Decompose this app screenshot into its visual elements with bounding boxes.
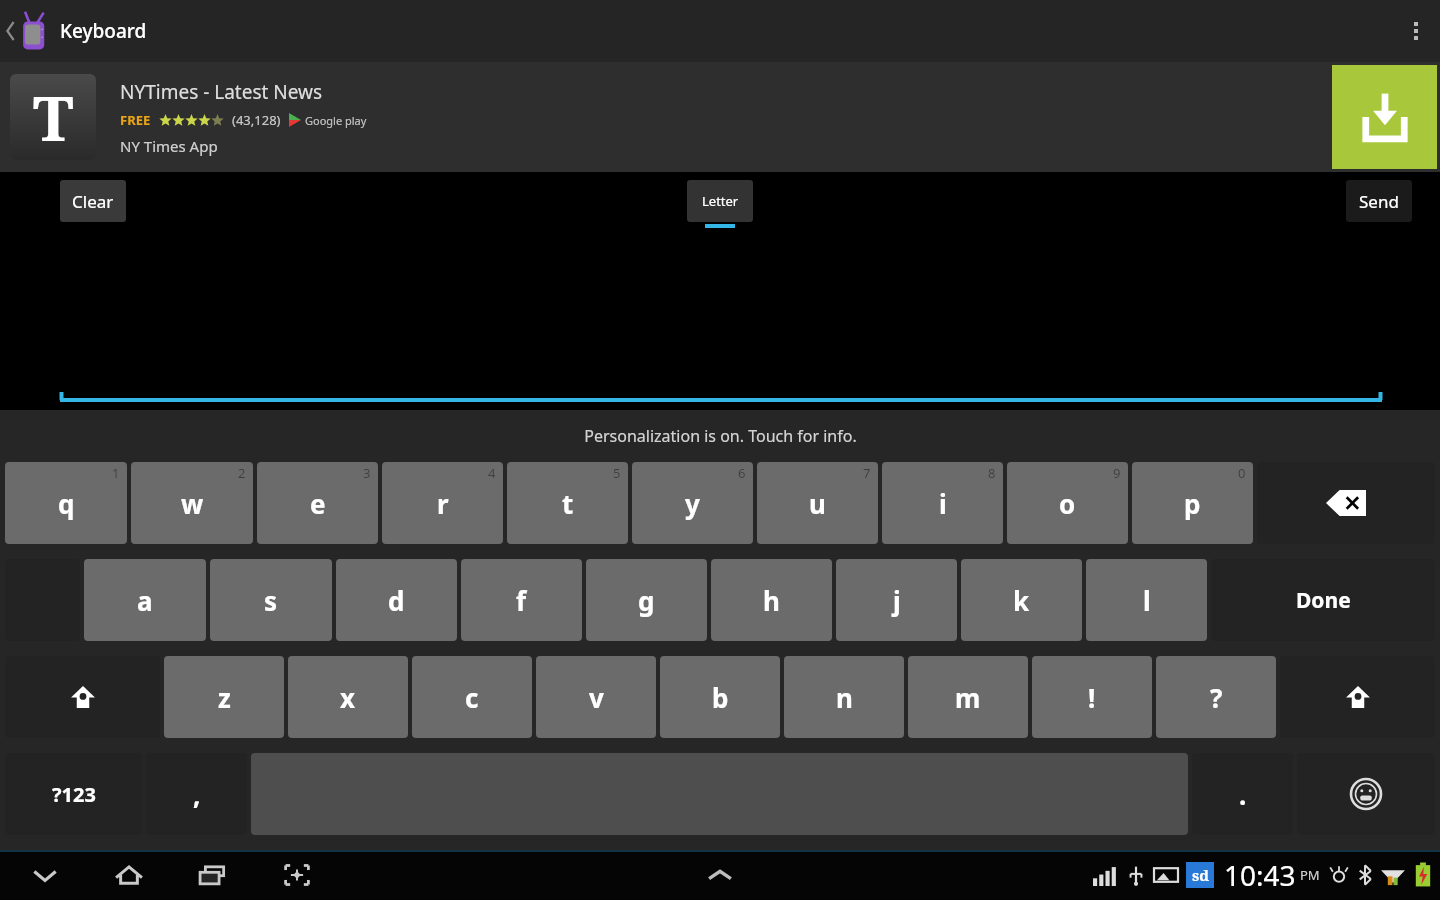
- button[interactable]: v: [536, 656, 656, 738]
- staticText: .: [1239, 777, 1247, 812]
- staticText: q: [58, 486, 75, 521]
- button[interactable]: ?123: [5, 753, 142, 835]
- staticText: v: [589, 680, 604, 715]
- button[interactable]: c: [412, 656, 532, 738]
- staticText: Letter: [702, 192, 739, 210]
- button[interactable]: b: [660, 656, 780, 738]
- staticText: a: [137, 583, 153, 618]
- button[interactable]: o: [1007, 462, 1128, 544]
- staticText: r: [437, 486, 449, 521]
- staticText: ?123: [52, 781, 96, 808]
- button[interactable]: f: [461, 559, 582, 641]
- staticText: Google play: [305, 113, 367, 128]
- button[interactable]: ,: [146, 753, 247, 835]
- staticText: Keyboard: [60, 18, 147, 44]
- staticText: 3: [363, 464, 371, 482]
- button[interactable]: Expand: [690, 850, 750, 900]
- staticText: NYTimes - Latest News: [120, 79, 323, 105]
- button[interactable]: Install: [1332, 65, 1437, 169]
- button[interactable]: z: [164, 656, 284, 738]
- staticText: h: [763, 583, 780, 618]
- staticText: d: [388, 583, 405, 618]
- staticText: b: [712, 680, 729, 715]
- staticText: 9: [1113, 464, 1121, 482]
- button[interactable]: p: [1132, 462, 1253, 544]
- staticText: x: [340, 680, 356, 715]
- button[interactable]: ?: [1156, 656, 1276, 738]
- button[interactable]: Clear: [60, 180, 126, 222]
- staticText: 7: [863, 464, 871, 482]
- button[interactable]: u: [757, 462, 878, 544]
- button[interactable]: w: [131, 462, 253, 544]
- button[interactable]: y: [632, 462, 753, 544]
- button[interactable]: q: [5, 462, 127, 544]
- button[interactable]: i: [882, 462, 1003, 544]
- staticText: y: [685, 486, 700, 521]
- button[interactable]: g: [586, 559, 707, 641]
- button[interactable]: Screenshot: [270, 850, 324, 900]
- staticText: l: [1143, 583, 1151, 618]
- button[interactable]: Backspace: [1257, 462, 1435, 544]
- staticText: Send: [1359, 190, 1399, 213]
- staticText: u: [809, 486, 826, 521]
- button[interactable]: Emoji: [1297, 753, 1435, 835]
- button[interactable]: m: [908, 656, 1028, 738]
- staticText: sd: [1192, 865, 1209, 885]
- staticText: !: [1088, 680, 1096, 715]
- button[interactable]: t: [507, 462, 628, 544]
- button[interactable]: x: [288, 656, 408, 738]
- staticText: NY Times App: [120, 136, 218, 156]
- button[interactable]: h: [711, 559, 832, 641]
- staticText: ,: [193, 777, 201, 812]
- button[interactable]: k: [961, 559, 1082, 641]
- button[interactable]: Shift: [1280, 656, 1435, 738]
- button[interactable]: d: [336, 559, 457, 641]
- button[interactable]: Done: [1211, 559, 1435, 641]
- staticText: PM: [1300, 866, 1320, 884]
- staticText: 8: [988, 464, 996, 482]
- staticText: f: [516, 583, 527, 618]
- staticText: i: [939, 486, 947, 521]
- button[interactable]: n: [784, 656, 904, 738]
- button[interactable]: e: [257, 462, 378, 544]
- staticText: p: [1184, 486, 1201, 521]
- button[interactable]: a: [84, 559, 206, 641]
- staticText: FREE: [120, 111, 151, 129]
- button[interactable]: j: [836, 559, 957, 641]
- button[interactable]: Home: [102, 850, 156, 900]
- staticText: 0: [1238, 464, 1246, 482]
- staticText: o: [1059, 486, 1076, 521]
- staticText: c: [465, 680, 479, 715]
- staticText: 2: [238, 464, 246, 482]
- staticText: (43,128): [232, 111, 281, 129]
- staticText: 1: [112, 464, 120, 482]
- button[interactable]: Hide keyboard: [18, 850, 72, 900]
- button[interactable]: Navigate up: [6, 6, 50, 56]
- button[interactable]: Shift: [5, 656, 160, 738]
- button[interactable]: Send: [1346, 180, 1412, 222]
- staticText: j: [893, 583, 901, 618]
- button[interactable]: Letter: [687, 180, 753, 228]
- staticText: 10:43: [1224, 856, 1296, 894]
- staticText: Done: [1296, 586, 1351, 615]
- button[interactable]: Recent apps: [186, 850, 240, 900]
- staticText: T: [33, 75, 74, 159]
- button[interactable]: !: [1032, 656, 1152, 738]
- button[interactable]: s: [210, 559, 332, 641]
- button[interactable]: .: [1192, 753, 1293, 835]
- button[interactable]: More options: [1392, 0, 1440, 62]
- staticText: s: [264, 583, 278, 618]
- staticText: k: [1013, 583, 1030, 618]
- staticText: Personalization is on. Touch for info.: [584, 425, 857, 447]
- staticText: w: [181, 486, 204, 521]
- staticText: n: [836, 680, 853, 715]
- staticText: Clear: [72, 190, 114, 213]
- staticText: 4: [488, 464, 496, 482]
- staticText: m: [955, 680, 981, 715]
- button[interactable]: T: [0, 62, 1440, 172]
- staticText: t: [562, 486, 574, 521]
- button[interactable]: r: [382, 462, 503, 544]
- button[interactable]: l: [1086, 559, 1207, 641]
